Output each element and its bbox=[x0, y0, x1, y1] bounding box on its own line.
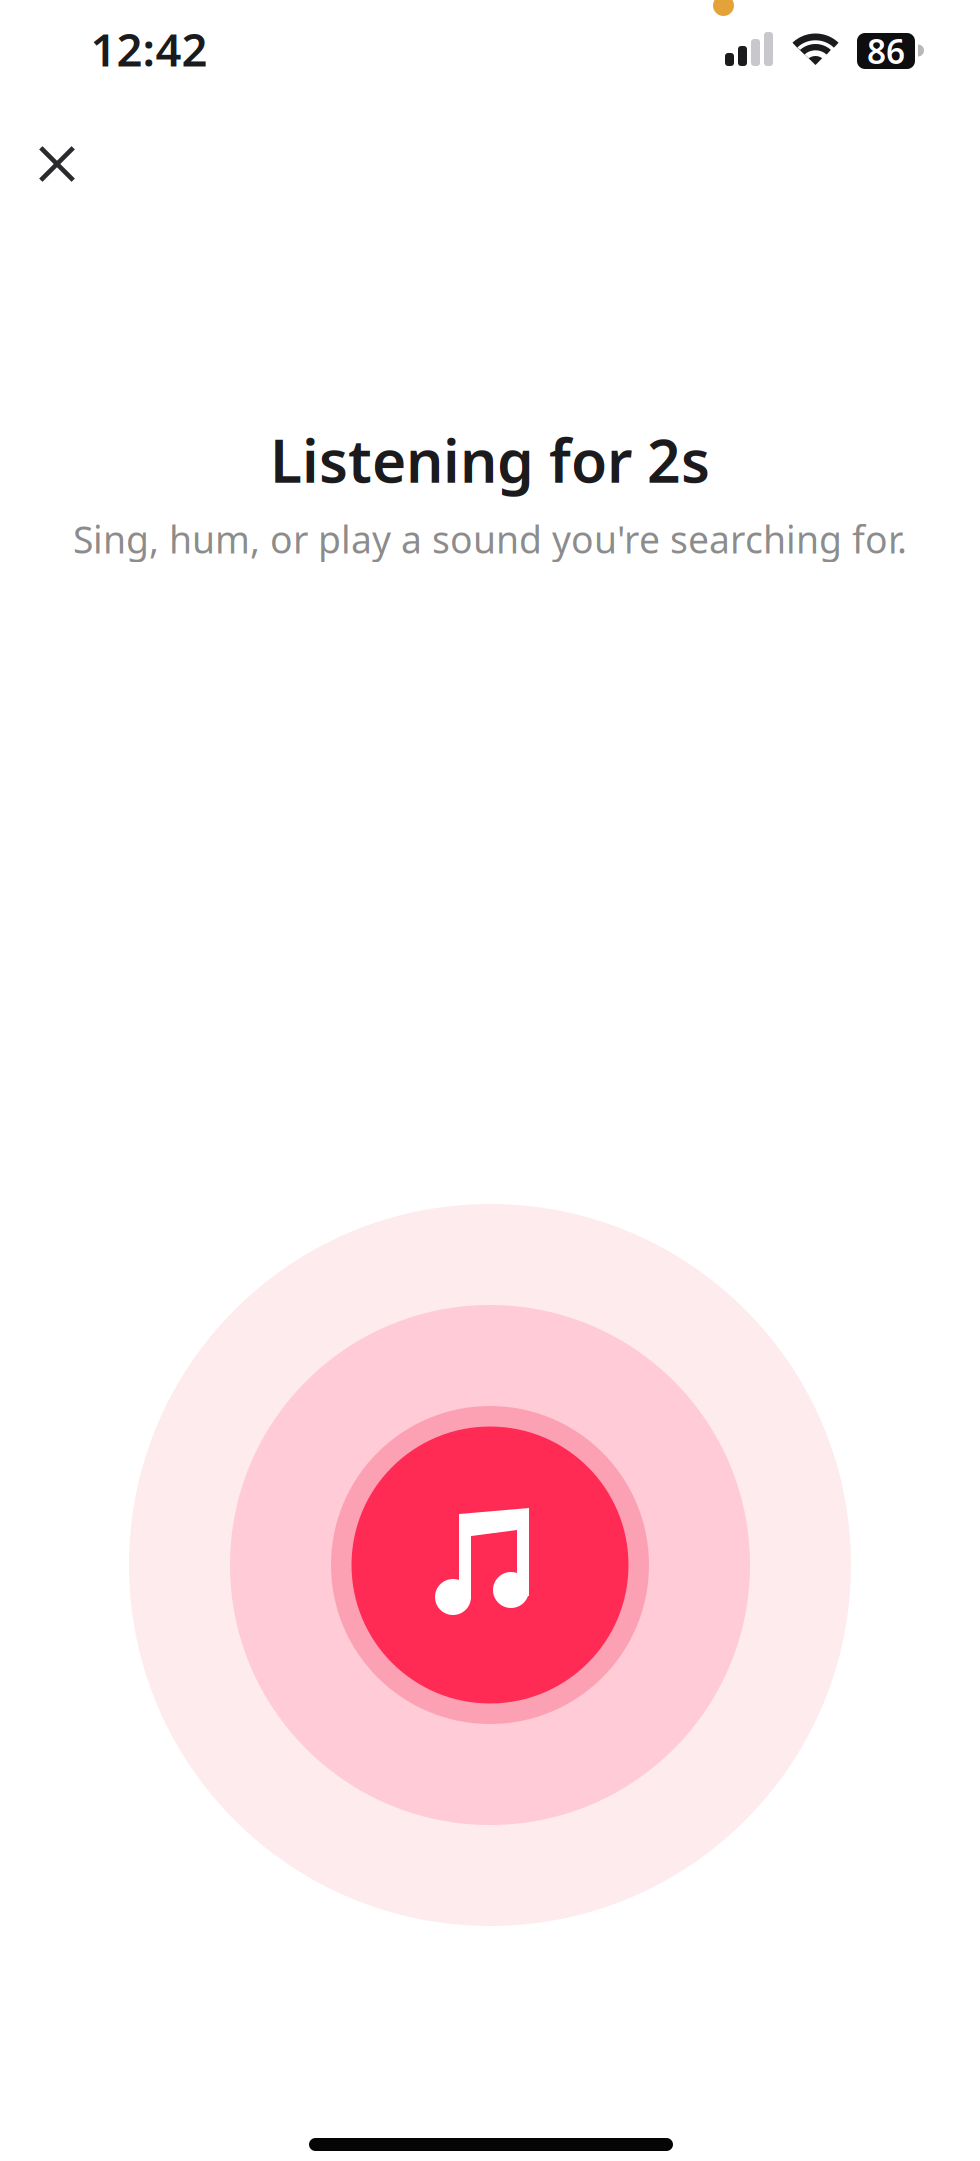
button[interactable]: Close bbox=[9, 116, 105, 212]
button[interactable]: Stop listening bbox=[129, 1204, 851, 1926]
staticText: 86 bbox=[867, 29, 905, 73]
staticText: Sing, hum, or play a sound you're search… bbox=[73, 514, 907, 564]
staticText: Listening for 2s bbox=[270, 421, 710, 499]
staticText: 12:42 bbox=[90, 19, 207, 79]
